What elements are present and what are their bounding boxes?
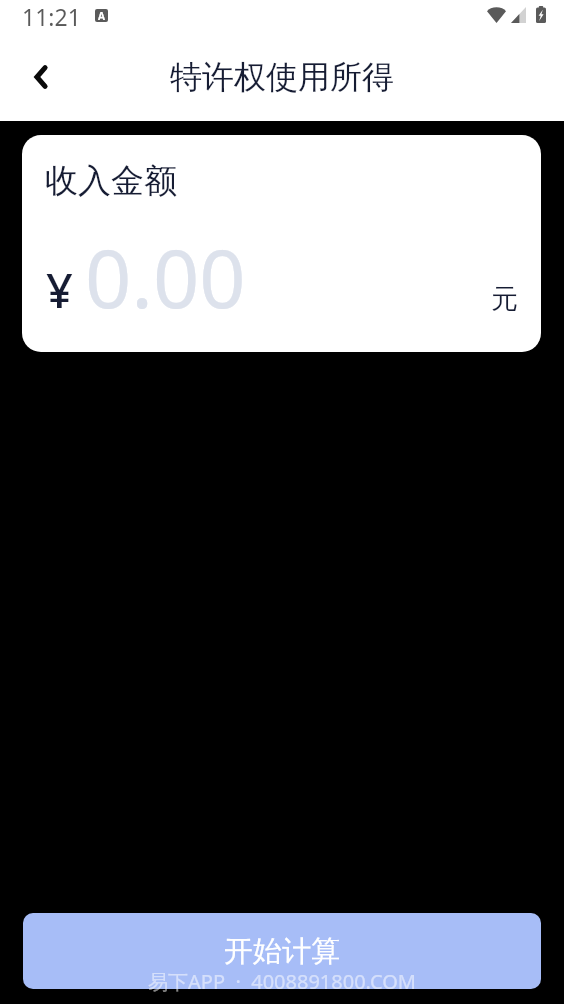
staticText: 收入金额	[45, 160, 177, 202]
staticText: A	[98, 9, 105, 22]
button[interactable]: 开始计算	[23, 913, 541, 989]
staticText: 易下APP · 4008891800.COM	[0, 968, 564, 995]
staticText: 0.00	[85, 221, 246, 331]
staticText: ¥	[46, 258, 73, 322]
button[interactable]: Income amount input	[22, 235, 541, 325]
staticText: 特许权使用所得	[170, 57, 394, 97]
staticText: 元	[491, 282, 518, 316]
button[interactable]: Back	[19, 55, 63, 99]
staticText: 开始计算	[224, 933, 340, 970]
staticText: 11:21	[22, 1, 81, 32]
